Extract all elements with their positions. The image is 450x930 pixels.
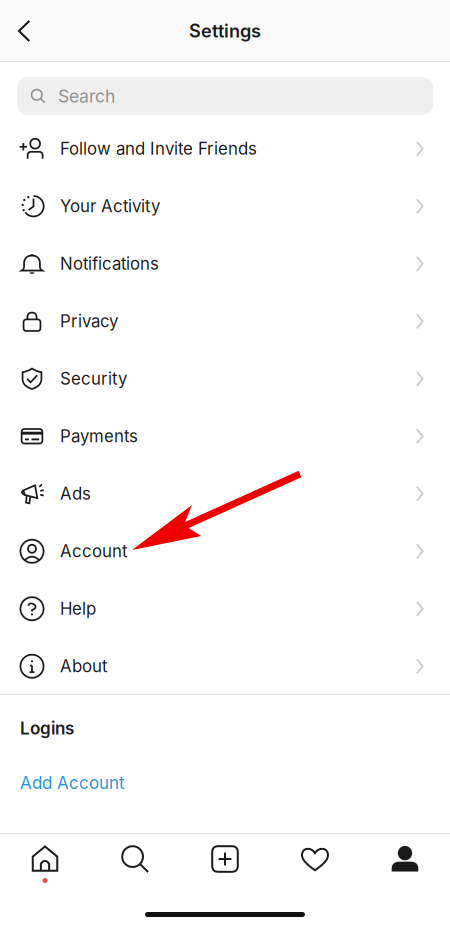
button[interactable]: Home — [0, 833, 90, 885]
button[interactable]: Your Activity — [0, 177, 450, 235]
button[interactable]: Ads — [0, 465, 450, 522]
staticText: Payments — [60, 426, 138, 446]
staticText: Ads — [60, 484, 91, 504]
staticText: Add Account — [20, 773, 125, 793]
button[interactable]: Back — [0, 1, 50, 61]
button[interactable]: Security — [0, 350, 450, 407]
button[interactable]: Follow and Invite Friends — [0, 120, 450, 177]
button[interactable]: Account — [0, 522, 450, 580]
button[interactable]: Profile — [360, 833, 450, 885]
staticText: Settings — [189, 20, 261, 42]
button[interactable]: Create — [180, 833, 270, 885]
staticText: Search — [58, 85, 115, 107]
button[interactable]: Privacy — [0, 292, 450, 350]
button[interactable]: Payments — [0, 407, 450, 465]
staticText: Follow and Invite Friends — [60, 139, 257, 159]
button[interactable]: Activity — [270, 833, 360, 885]
staticText: Help — [60, 599, 96, 619]
staticText: Privacy — [60, 311, 118, 331]
staticText: Account — [60, 541, 127, 561]
staticText: Your Activity — [60, 196, 160, 216]
button[interactable]: Add Account — [0, 739, 139, 803]
button[interactable]: Help — [0, 580, 450, 637]
staticText: Security — [60, 369, 127, 389]
button[interactable]: Search — [90, 833, 180, 885]
staticText: About — [60, 656, 107, 676]
staticText: Notifications — [60, 254, 159, 274]
staticText: Logins — [20, 718, 74, 739]
button[interactable]: Notifications — [0, 235, 450, 292]
button[interactable]: Search — [0, 62, 450, 120]
button[interactable]: About — [0, 637, 450, 695]
